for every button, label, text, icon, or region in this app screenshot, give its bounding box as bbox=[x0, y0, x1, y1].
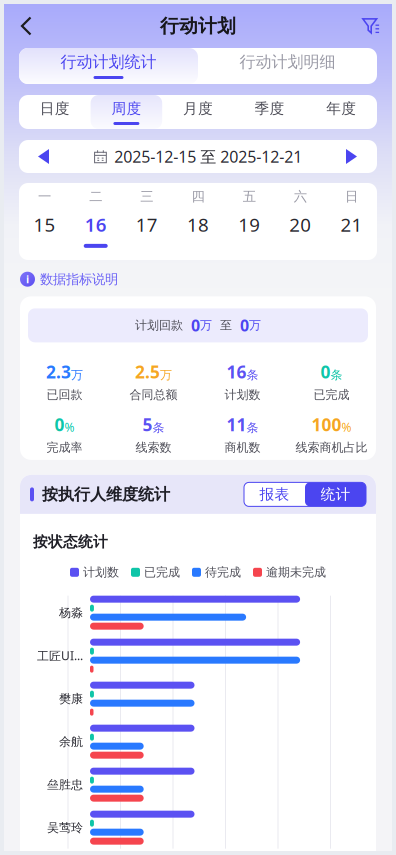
button[interactable]: 17 bbox=[121, 210, 172, 250]
staticText: 数据指标说明 bbox=[40, 271, 118, 287]
staticText: 行动计划 bbox=[160, 14, 236, 37]
staticText: 11 bbox=[226, 413, 246, 436]
staticText: 条 bbox=[330, 368, 342, 382]
button[interactable]: 季度 bbox=[234, 95, 305, 129]
staticText: 按状态统计 bbox=[33, 533, 108, 551]
staticText: 16 bbox=[226, 360, 246, 383]
staticText: 万 bbox=[200, 318, 212, 333]
button[interactable]: 统计 bbox=[305, 482, 366, 506]
staticText: 16 bbox=[85, 212, 107, 237]
staticText: 四 bbox=[191, 188, 204, 205]
staticText: 20 bbox=[289, 212, 311, 237]
button[interactable]: 18 bbox=[172, 210, 223, 250]
staticText: 月度 bbox=[183, 99, 213, 117]
staticText: 已完成 bbox=[144, 565, 180, 580]
staticText: 0 bbox=[320, 360, 330, 383]
staticText: 100 bbox=[311, 413, 341, 436]
button[interactable]: 16 bbox=[70, 210, 121, 250]
staticText: 17 bbox=[136, 212, 158, 237]
button[interactable]: 行动计划明细 bbox=[198, 48, 377, 84]
staticText: 5 bbox=[142, 413, 152, 436]
staticText: 逾期未完成 bbox=[266, 565, 326, 580]
staticText: 计划回款 bbox=[135, 318, 183, 333]
staticText: 2.3 bbox=[46, 360, 71, 383]
staticText: 线索数 bbox=[135, 440, 171, 455]
staticText: 樊康 bbox=[59, 691, 83, 706]
staticText: 行动计划明细 bbox=[239, 52, 335, 72]
staticText: 条 bbox=[246, 368, 258, 382]
staticText: 二 bbox=[89, 188, 102, 205]
staticText: % bbox=[341, 419, 351, 435]
button[interactable]: 行动计划统计 bbox=[19, 48, 198, 84]
button[interactable]: 月度 bbox=[162, 95, 234, 129]
staticText: 完成率 bbox=[46, 440, 82, 455]
staticText: 周度 bbox=[111, 99, 141, 117]
staticText: 0 bbox=[240, 315, 249, 336]
staticText: 万 bbox=[71, 368, 83, 382]
staticText: 商机数 bbox=[224, 440, 260, 455]
staticText: 行动计划统计 bbox=[60, 52, 156, 72]
staticText: 工匠UI... bbox=[37, 648, 83, 664]
button[interactable]: 周度 bbox=[91, 95, 162, 129]
button[interactable]: 20 bbox=[275, 210, 326, 250]
staticText: 一 bbox=[38, 188, 51, 205]
staticText: 三 bbox=[140, 188, 153, 205]
button[interactable]: 日度 bbox=[19, 95, 91, 129]
staticText: 条 bbox=[152, 420, 164, 435]
staticText: 条 bbox=[246, 420, 258, 435]
staticText: % bbox=[64, 419, 74, 435]
button[interactable]: 21 bbox=[326, 210, 377, 250]
staticText: 日度 bbox=[40, 99, 70, 117]
staticText: 六 bbox=[294, 188, 307, 205]
staticText: 已回款 bbox=[46, 387, 82, 402]
staticText: 季度 bbox=[255, 99, 285, 117]
button[interactable]: Previous week bbox=[19, 140, 69, 173]
staticText: 18 bbox=[187, 212, 209, 237]
staticText: 日 bbox=[345, 188, 358, 205]
staticText: 年度 bbox=[326, 99, 356, 117]
staticText: 待完成 bbox=[205, 565, 241, 580]
staticText: 万 bbox=[249, 318, 261, 333]
staticText: 已完成 bbox=[313, 387, 349, 402]
staticText: 至 bbox=[220, 318, 232, 333]
staticText: 19 bbox=[238, 212, 260, 237]
staticText: 2025-12-15 至 2025-12-21 bbox=[114, 146, 302, 167]
staticText: 0 bbox=[54, 413, 64, 436]
staticText: 报表 bbox=[259, 485, 289, 503]
button[interactable]: 15 bbox=[19, 210, 70, 250]
button[interactable]: 19 bbox=[224, 210, 275, 250]
staticText: 计划数 bbox=[83, 565, 119, 580]
staticText: 万 bbox=[160, 368, 172, 382]
staticText: 21 bbox=[340, 212, 362, 237]
staticText: 线索商机占比 bbox=[295, 440, 367, 455]
button[interactable]: Back bbox=[4, 6, 48, 46]
button[interactable]: i bbox=[4, 260, 392, 296]
staticText: 亝胜忠 bbox=[47, 777, 83, 792]
staticText: 计划数 bbox=[224, 387, 260, 402]
staticText: 0 bbox=[191, 315, 200, 336]
staticText: 合同总额 bbox=[129, 387, 177, 402]
button[interactable]: 报表 bbox=[244, 482, 305, 506]
staticText: 统计 bbox=[320, 485, 350, 503]
staticText: 15 bbox=[34, 212, 56, 237]
button[interactable]: Filter bbox=[348, 6, 392, 46]
staticText: 按执行人维度统计 bbox=[42, 485, 170, 504]
staticText: 吴莺玲 bbox=[47, 820, 83, 835]
button[interactable]: Next week bbox=[327, 140, 377, 173]
staticText: 余航 bbox=[59, 734, 83, 749]
staticText: 2.5 bbox=[135, 360, 160, 383]
button[interactable]: 年度 bbox=[305, 95, 377, 129]
staticText: 杨淼 bbox=[59, 605, 83, 620]
staticText: 五 bbox=[243, 188, 256, 205]
staticText: i bbox=[26, 272, 29, 286]
